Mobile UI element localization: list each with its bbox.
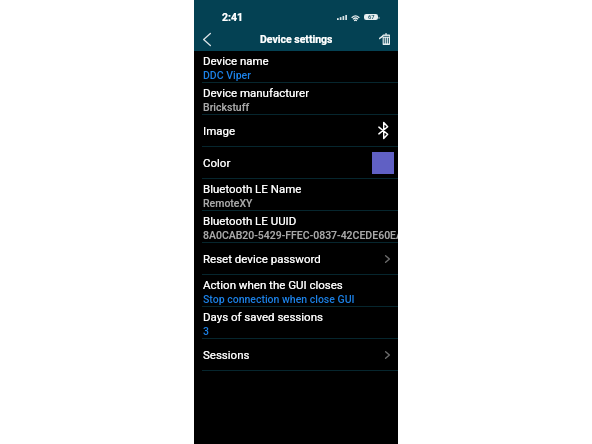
staticText: 67 bbox=[368, 14, 375, 20]
staticText: Action when the GUI closes bbox=[203, 278, 343, 291]
staticText: DDC Viper bbox=[203, 69, 251, 81]
button[interactable]: Device manufacturer bbox=[194, 83, 398, 115]
staticText: 2:41 bbox=[222, 11, 244, 23]
staticText: Stop connection when close GUI bbox=[203, 293, 355, 305]
button[interactable]: Bluetooth LE UUID bbox=[194, 211, 398, 243]
staticText: RemoteXY bbox=[203, 197, 253, 209]
staticText: Color bbox=[203, 156, 231, 169]
staticText: Brickstuff bbox=[203, 101, 250, 113]
staticText: Device manufacturer bbox=[203, 86, 310, 99]
staticText: Sessions bbox=[203, 348, 250, 361]
button[interactable]: Back bbox=[197, 29, 217, 49]
button[interactable]: Image bbox=[194, 115, 398, 147]
staticText: Device settings bbox=[260, 33, 333, 45]
button[interactable]: Device name bbox=[194, 51, 398, 83]
staticText: 8A0CAB20-5429-FFEC-0837-42CEDE60EA12 bbox=[203, 229, 398, 241]
staticText: Device name bbox=[203, 54, 269, 67]
button[interactable]: Days of saved sessions bbox=[194, 307, 398, 339]
staticText: Bluetooth LE UUID bbox=[203, 214, 297, 227]
staticText: Image bbox=[203, 124, 236, 137]
button[interactable]: Color bbox=[194, 147, 398, 179]
staticText: Bluetooth LE Name bbox=[203, 182, 302, 195]
button[interactable]: Action when the GUI closes bbox=[194, 275, 398, 307]
staticText: 3 bbox=[203, 325, 209, 337]
staticText: Reset device password bbox=[203, 252, 321, 265]
button[interactable]: Sessions bbox=[194, 339, 398, 371]
staticText: Days of saved sessions bbox=[203, 310, 323, 323]
button[interactable]: Reset device password bbox=[194, 243, 398, 275]
button[interactable]: Bluetooth LE Name bbox=[194, 179, 398, 211]
button[interactable]: Delete bbox=[376, 31, 392, 47]
